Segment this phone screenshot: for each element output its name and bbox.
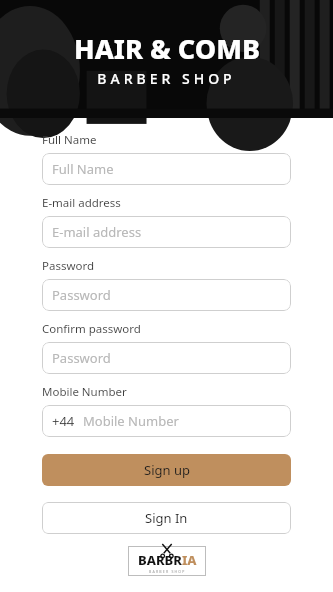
button[interactable]: Sign In: [42, 502, 291, 534]
staticText: Mobile Number: [42, 384, 127, 400]
button[interactable]: Password: [42, 342, 291, 374]
button[interactable]: Password: [42, 279, 291, 311]
staticText: Full Name: [42, 132, 97, 148]
button[interactable]: Full Name: [42, 153, 291, 185]
staticText: E-mail address: [52, 223, 142, 241]
staticText: +44: [52, 412, 75, 430]
staticText: BARBER SHOP: [97, 69, 236, 88]
staticText: Mobile Number: [83, 412, 179, 430]
staticText: Password: [42, 258, 95, 274]
staticText: IA: [182, 551, 197, 569]
button[interactable]: +44: [42, 405, 291, 437]
staticText: BARBER SHOP: [149, 569, 186, 574]
staticText: Confirm password: [42, 321, 141, 337]
button[interactable]: Barbria logo: [126, 544, 208, 578]
staticText: Full Name: [52, 160, 114, 178]
staticText: Sign In: [145, 509, 188, 527]
staticText: HAIR & COMB: [74, 30, 260, 67]
staticText: Sign up: [144, 461, 190, 479]
button[interactable]: Sign up: [42, 454, 291, 486]
button[interactable]: E-mail address: [42, 216, 291, 248]
staticText: E-mail address: [42, 195, 121, 211]
staticText: Password: [52, 349, 111, 367]
staticText: BARBR: [138, 551, 182, 569]
staticText: Password: [52, 286, 111, 304]
